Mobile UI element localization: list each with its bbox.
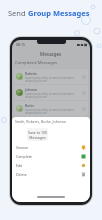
- staticText: Lorem ipsum dolor sit amet consectetur a…: [25, 76, 81, 82]
- staticText: Completed Messages: [15, 60, 58, 66]
- other: Edit: [81, 163, 86, 168]
- other: Complete: [81, 154, 86, 159]
- staticText: Lorem ipsum dolor sit amet consectetur a…: [25, 108, 81, 114]
- staticText: Edit: [16, 163, 23, 168]
- button[interactable]: Delete: [12, 170, 90, 179]
- staticText: Smith, Roberts, Burke, Johnson: [15, 119, 66, 124]
- other: Delete: [81, 172, 86, 177]
- staticText: Johnson: [25, 88, 38, 92]
- button[interactable]: Burke: [14, 101, 88, 116]
- staticText: Snooze: [16, 145, 28, 150]
- staticText: Send: [8, 8, 28, 18]
- staticText: Group Messages: [28, 8, 90, 18]
- button[interactable]: Snooze: [12, 143, 90, 152]
- button[interactable]: Roberts: [14, 69, 88, 84]
- staticText: Roberts: [25, 72, 37, 76]
- staticText: Burke: [25, 104, 35, 108]
- staticText: Delete: [16, 172, 27, 177]
- staticText: Messages: [40, 51, 62, 57]
- staticText: Lorem ipsum dolor sit amet consectetur a…: [25, 92, 81, 98]
- staticText: 08:15: [16, 42, 25, 47]
- button[interactable]: Save to 100 Messages: [27, 128, 48, 141]
- button[interactable]: Johnson: [14, 85, 88, 100]
- button[interactable]: Edit: [12, 161, 90, 170]
- staticText: Save to 100 Messages: [28, 130, 47, 140]
- staticText: Complete: [16, 154, 32, 159]
- button[interactable]: Complete: [12, 152, 90, 161]
- other: Snooze: [81, 145, 86, 150]
